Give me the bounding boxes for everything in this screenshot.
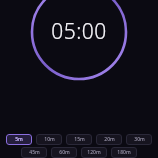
staticText: 60m [59,149,70,156]
button[interactable]: 60m [51,147,77,158]
button[interactable]: 10m [36,134,62,145]
button[interactable]: 120m [81,147,107,158]
button[interactable]: Timer progress, 5 minutes [0,0,158,111]
button[interactable]: 45m [21,147,47,158]
button[interactable]: 30m [126,134,152,145]
staticText: 45m [29,149,40,156]
staticText: 15m [74,136,85,143]
staticText: 10m [44,136,55,143]
staticText: 180m [117,149,131,156]
button[interactable]: 180m [111,147,137,158]
button[interactable]: 20m [96,134,122,145]
staticText: 05:00 [51,17,107,46]
staticText: 30m [134,136,145,143]
button[interactable]: 5m [6,134,32,145]
staticText: 5m [15,136,23,143]
staticText: 20m [104,136,115,143]
staticText: 120m [87,149,101,156]
button[interactable]: 15m [66,134,92,145]
